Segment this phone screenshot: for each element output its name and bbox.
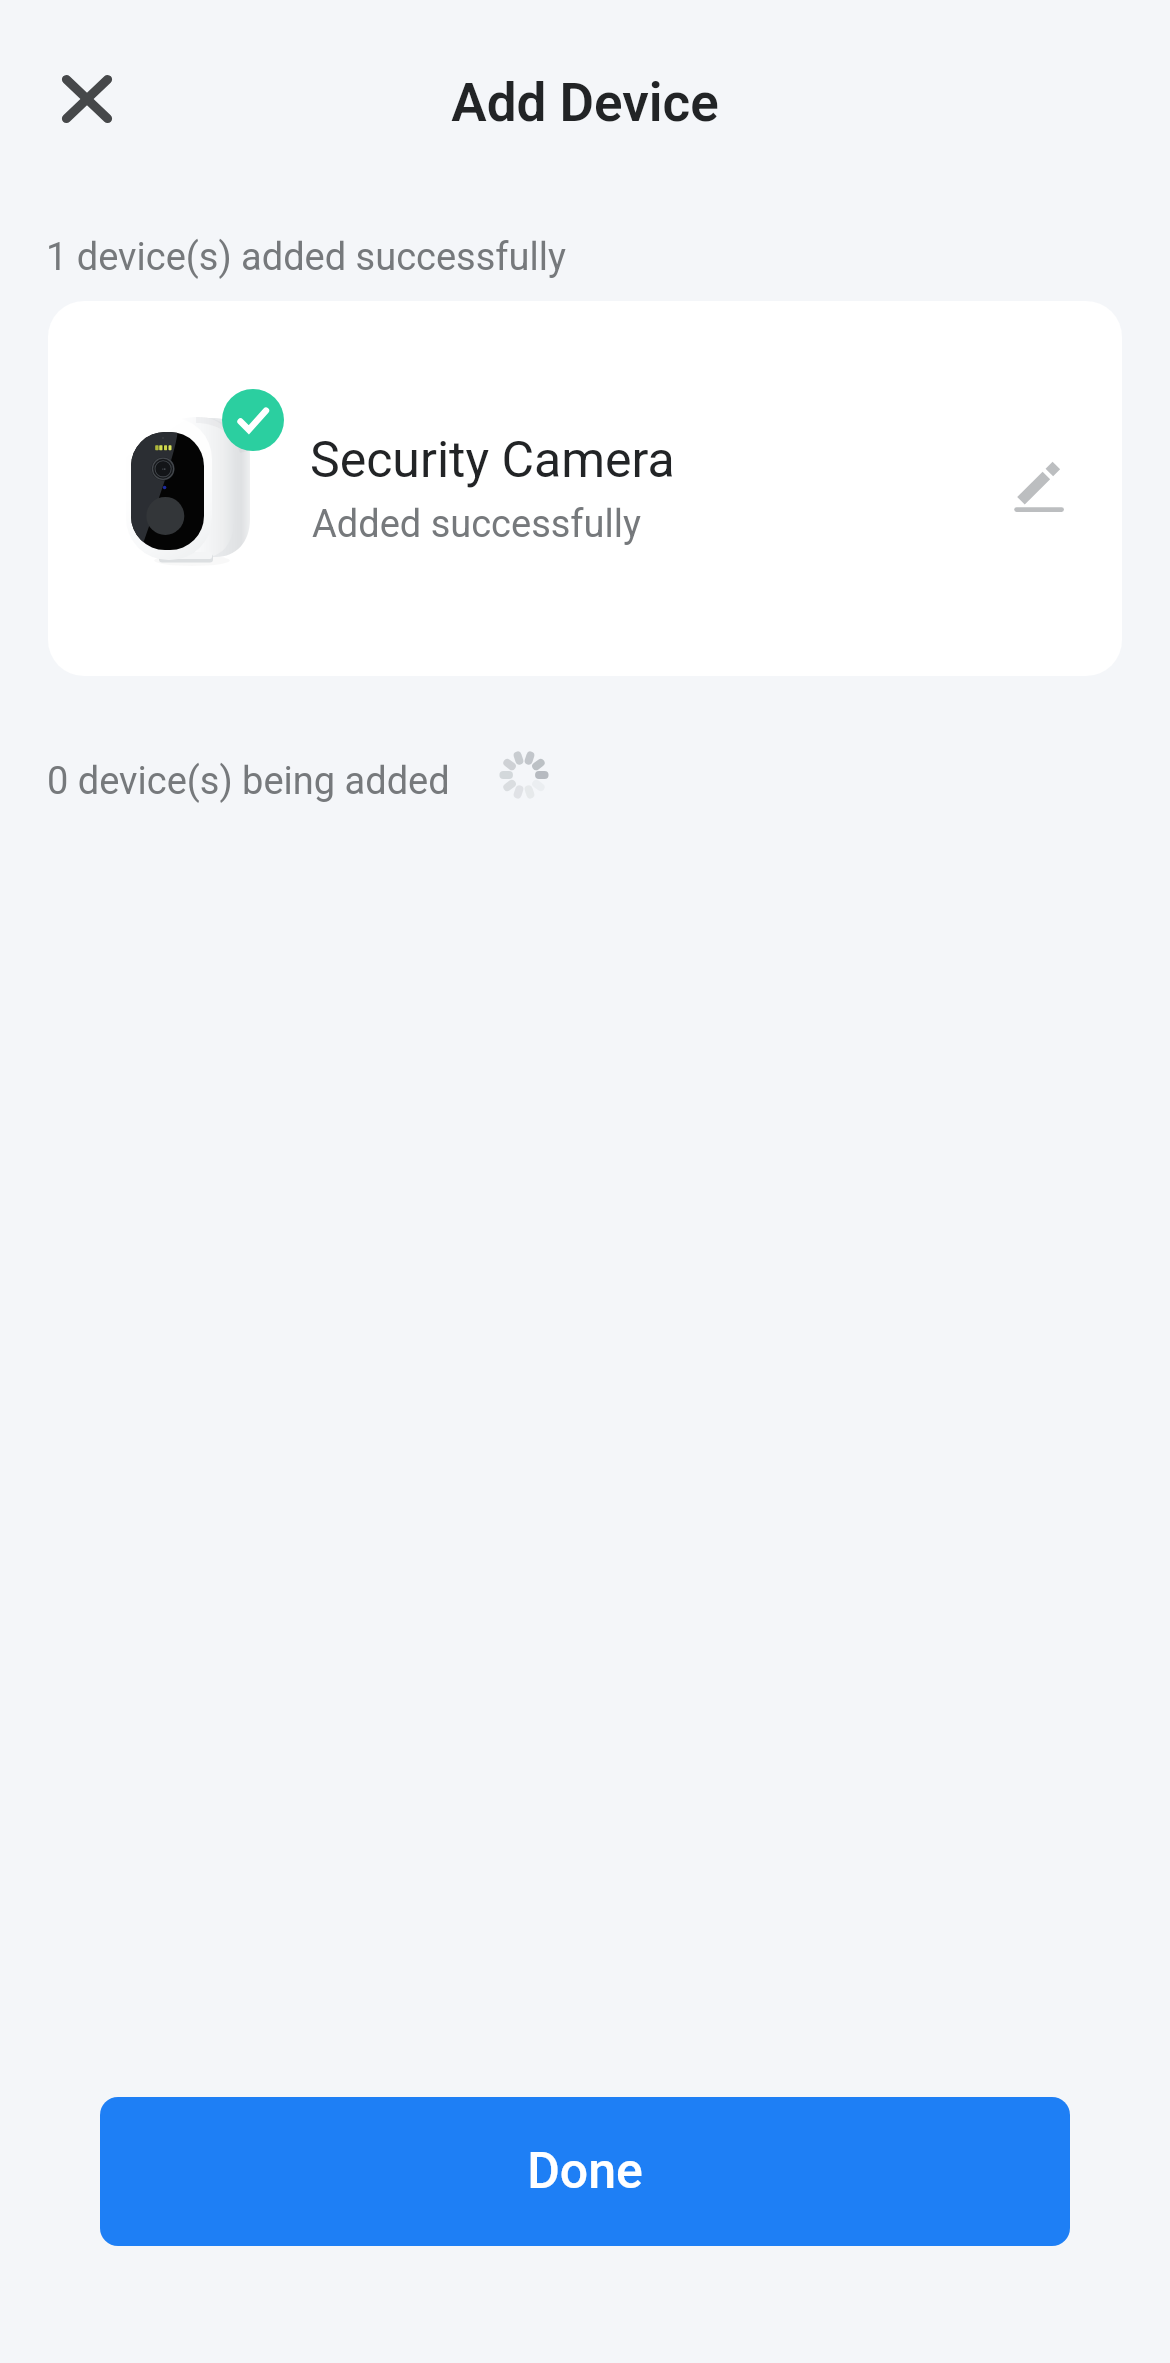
button[interactable]: Close — [40, 52, 134, 146]
button[interactable]: Rename device — [985, 435, 1085, 535]
staticText: Added successfully — [312, 502, 641, 547]
staticText: Security Camera — [310, 431, 675, 490]
staticText: 0 device(s) being added — [47, 759, 450, 804]
staticText: Done — [527, 2142, 643, 2201]
staticText: 1 device(s) added successfully — [46, 235, 566, 280]
button[interactable]: Security Camera — [48, 301, 1122, 676]
button[interactable]: Done — [100, 2097, 1070, 2246]
staticText: Add Device — [0, 72, 1170, 134]
